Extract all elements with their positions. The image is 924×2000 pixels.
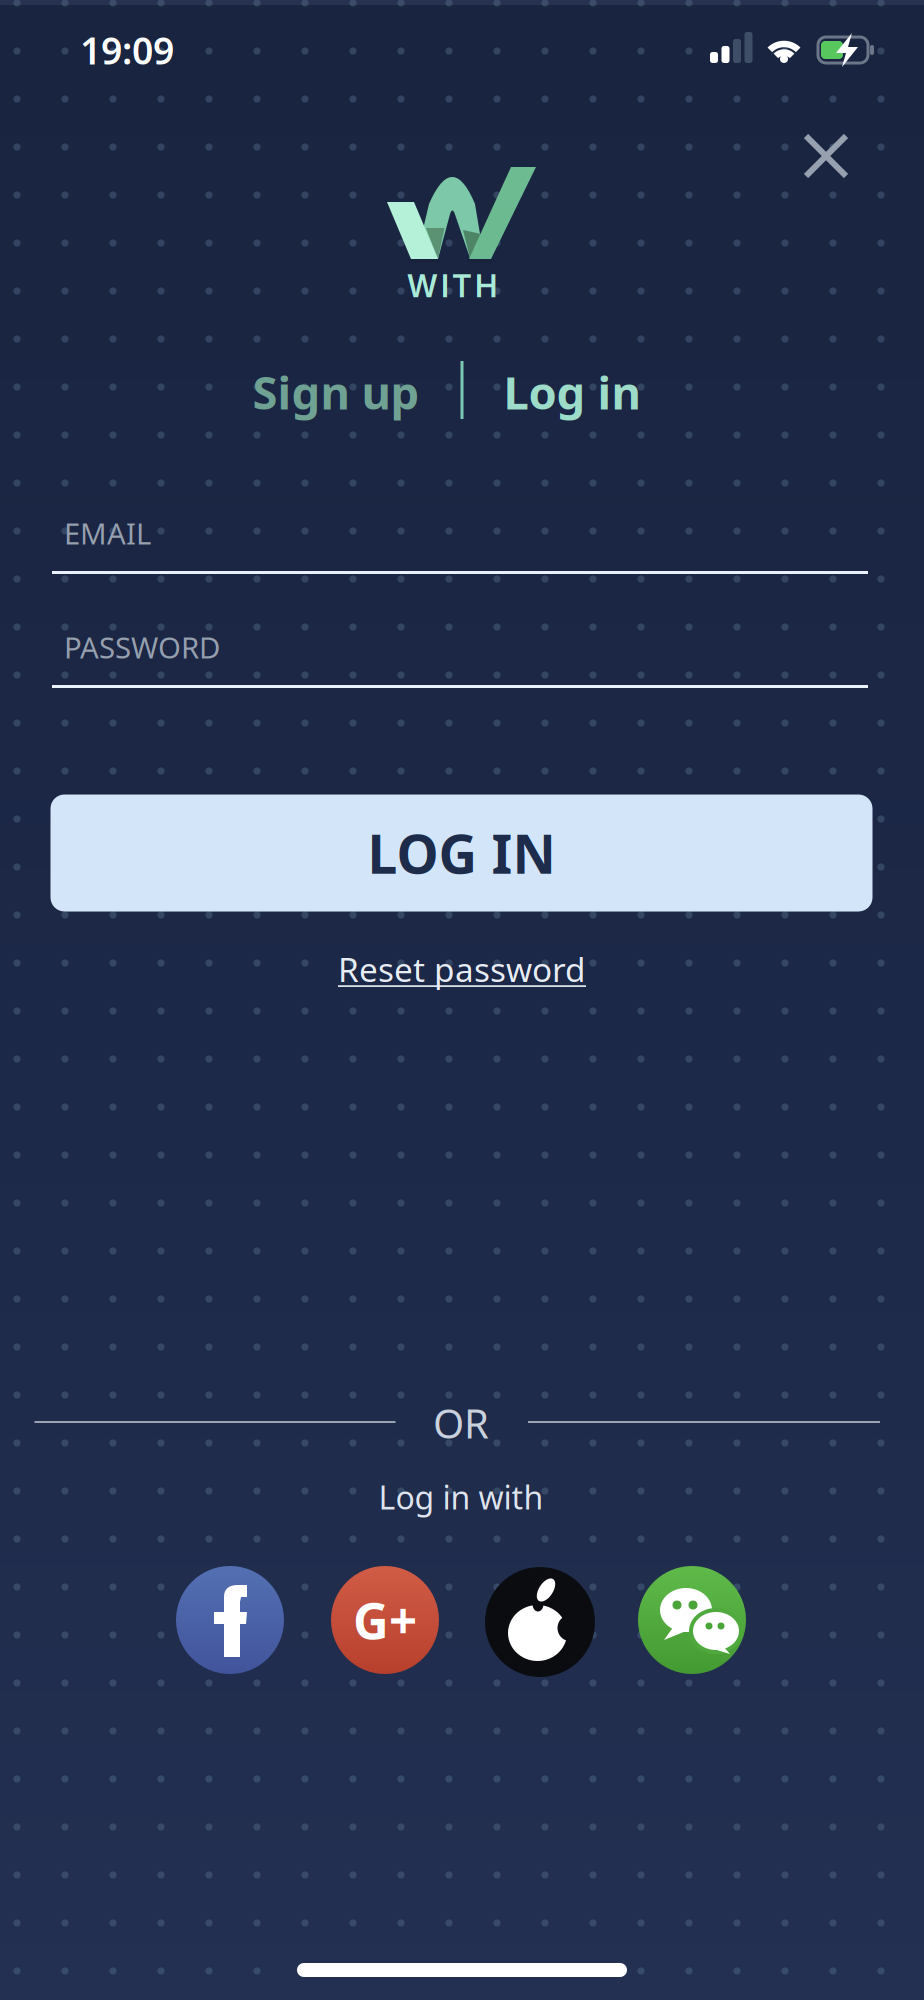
staticText: Log in xyxy=(503,362,640,422)
button[interactable]: Log in with Apple xyxy=(485,1567,595,1677)
button[interactable]: Log in with WeChat xyxy=(638,1566,746,1674)
staticText: 19:09 xyxy=(80,25,174,75)
staticText: OR xyxy=(433,1396,489,1449)
staticText: PASSWORD xyxy=(64,627,220,666)
staticText: LOG IN xyxy=(367,818,555,888)
button[interactable]: Log in with Google xyxy=(331,1566,439,1674)
staticText: Log in with xyxy=(378,1476,543,1518)
button[interactable]: LOG IN xyxy=(50,794,872,911)
staticText: EMAIL xyxy=(64,513,151,552)
staticText: WITH xyxy=(407,267,497,304)
button[interactable]: Log in with Facebook xyxy=(176,1566,284,1674)
button[interactable]: Reset password xyxy=(338,947,586,991)
staticText: Sign up xyxy=(252,362,419,422)
staticText: G+ xyxy=(353,1587,417,1653)
button[interactable]: Close xyxy=(796,126,856,186)
staticText: Reset password xyxy=(338,947,586,991)
button[interactable]: Sign up xyxy=(252,362,419,422)
button[interactable]: Log in xyxy=(503,362,640,422)
